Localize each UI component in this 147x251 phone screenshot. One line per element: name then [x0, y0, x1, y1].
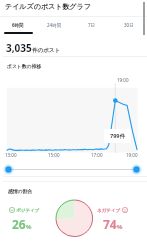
button[interactable]: 30日: [110, 17, 147, 35]
staticText: 19:00: [117, 77, 129, 83]
staticText: 30日: [124, 22, 134, 28]
staticText: 13:00: [5, 152, 17, 158]
staticText: 15:00: [48, 152, 60, 158]
staticText: ポスト数の推移: [7, 63, 42, 69]
staticText: 件のポスト: [32, 47, 61, 54]
staticText: 6時間: [12, 22, 24, 28]
staticText: 19:00: [126, 152, 138, 158]
button[interactable]: 6時間: [0, 17, 36, 35]
staticText: 感情の割合: [8, 188, 33, 194]
staticText: ネガティブ: [97, 207, 122, 213]
staticText: 799件: [110, 132, 125, 140]
staticText: 17:00: [91, 152, 103, 158]
staticText: ポジティブ: [15, 207, 40, 213]
button[interactable]: 24時間: [36, 17, 73, 35]
button[interactable]: 7日: [73, 17, 110, 35]
staticText: 7日: [88, 22, 96, 28]
staticText: %: [26, 223, 32, 231]
staticText: 26: [12, 216, 26, 232]
button[interactable]: Time range slider: [0, 162, 147, 176]
staticText: 74: [103, 216, 117, 232]
staticText: 24時間: [47, 22, 62, 28]
staticText: 3,035: [6, 41, 32, 55]
staticText: %: [117, 223, 123, 231]
staticText: テイルズのポスト数グラフ: [5, 2, 91, 11]
